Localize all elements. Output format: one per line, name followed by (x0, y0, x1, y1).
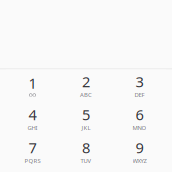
staticText: GHI (27, 124, 37, 132)
staticText: DEF (134, 91, 144, 99)
staticText: PQRS (24, 157, 40, 165)
button[interactable]: 6 MNO (113, 102, 166, 135)
button[interactable]: 4 GHI (6, 102, 59, 135)
staticText: JKL (81, 124, 90, 132)
staticText: 9 (135, 139, 143, 156)
staticText: 4 (28, 106, 36, 123)
button[interactable]: 1, voicemail (6, 69, 59, 102)
button[interactable]: 7 PQRS (6, 135, 59, 168)
button[interactable]: 5 JKL (59, 102, 113, 135)
staticText: 5 (82, 106, 90, 123)
staticText: WXYZ (132, 157, 146, 165)
staticText: 6 (135, 106, 143, 123)
staticText: MNO (132, 124, 146, 132)
button[interactable]: 2 ABC (59, 69, 113, 102)
button[interactable]: 8 TUV (59, 135, 113, 168)
button[interactable]: 3 DEF (113, 69, 166, 102)
staticText: 7 (28, 139, 36, 156)
staticText: ABC (80, 91, 92, 99)
staticText: 8 (82, 139, 90, 156)
button[interactable]: 9 WXYZ (113, 135, 166, 168)
staticText: 3 (135, 73, 143, 90)
staticText: 1 (28, 75, 36, 91)
staticText: TUV (80, 157, 91, 165)
staticText: 2 (82, 73, 90, 90)
